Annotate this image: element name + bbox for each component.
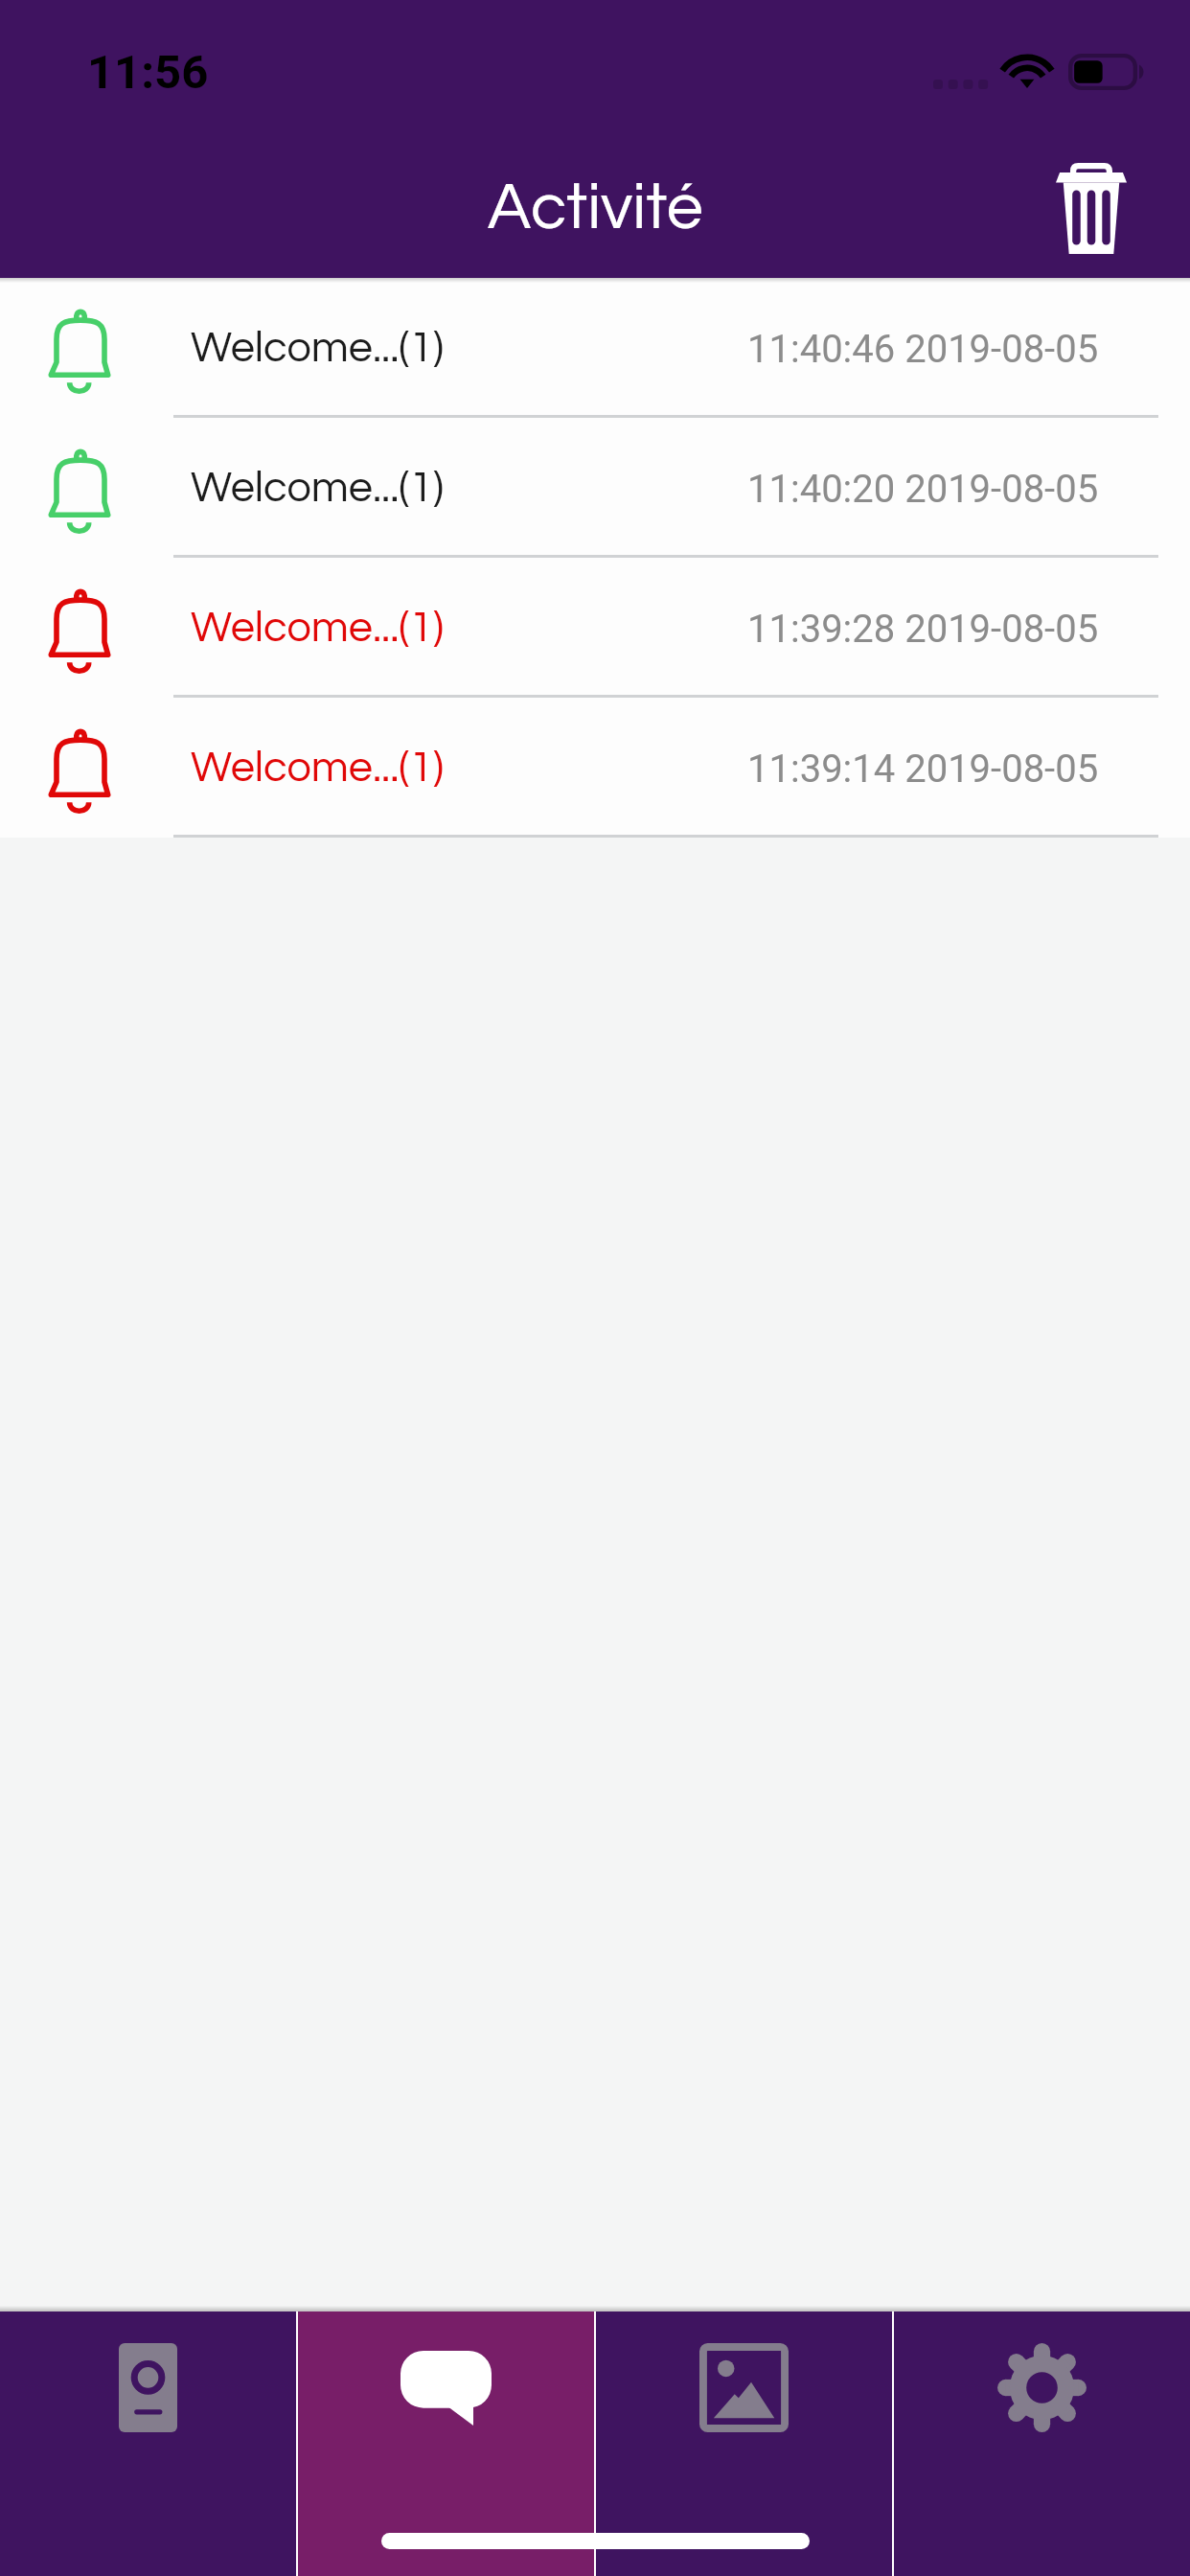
button[interactable]: Welcome...(1) (0, 418, 1190, 558)
button[interactable]: Delete all (1039, 148, 1144, 268)
staticText: 11:56 (87, 45, 209, 100)
staticText: Activité (488, 174, 703, 241)
button[interactable]: Activity (298, 2311, 594, 2576)
button[interactable]: Welcome...(1) (0, 698, 1190, 838)
staticText: 11:40:20 2019-08-05 (747, 467, 1099, 512)
staticText: 11:39:14 2019-08-05 (747, 747, 1099, 792)
staticText: 11:40:46 2019-08-05 (747, 327, 1099, 372)
staticText: 11:39:28 2019-08-05 (747, 607, 1099, 652)
staticText: Welcome...(1) (191, 606, 445, 650)
staticText: Welcome...(1) (191, 466, 445, 510)
button[interactable]: Gallery (596, 2311, 892, 2576)
button[interactable]: Welcome...(1) (0, 278, 1190, 418)
button[interactable]: Welcome...(1) (0, 558, 1190, 698)
button[interactable]: Doorbell (0, 2311, 296, 2576)
staticText: Welcome...(1) (191, 326, 445, 370)
staticText: Welcome...(1) (191, 746, 445, 790)
button[interactable]: Settings (894, 2311, 1190, 2576)
